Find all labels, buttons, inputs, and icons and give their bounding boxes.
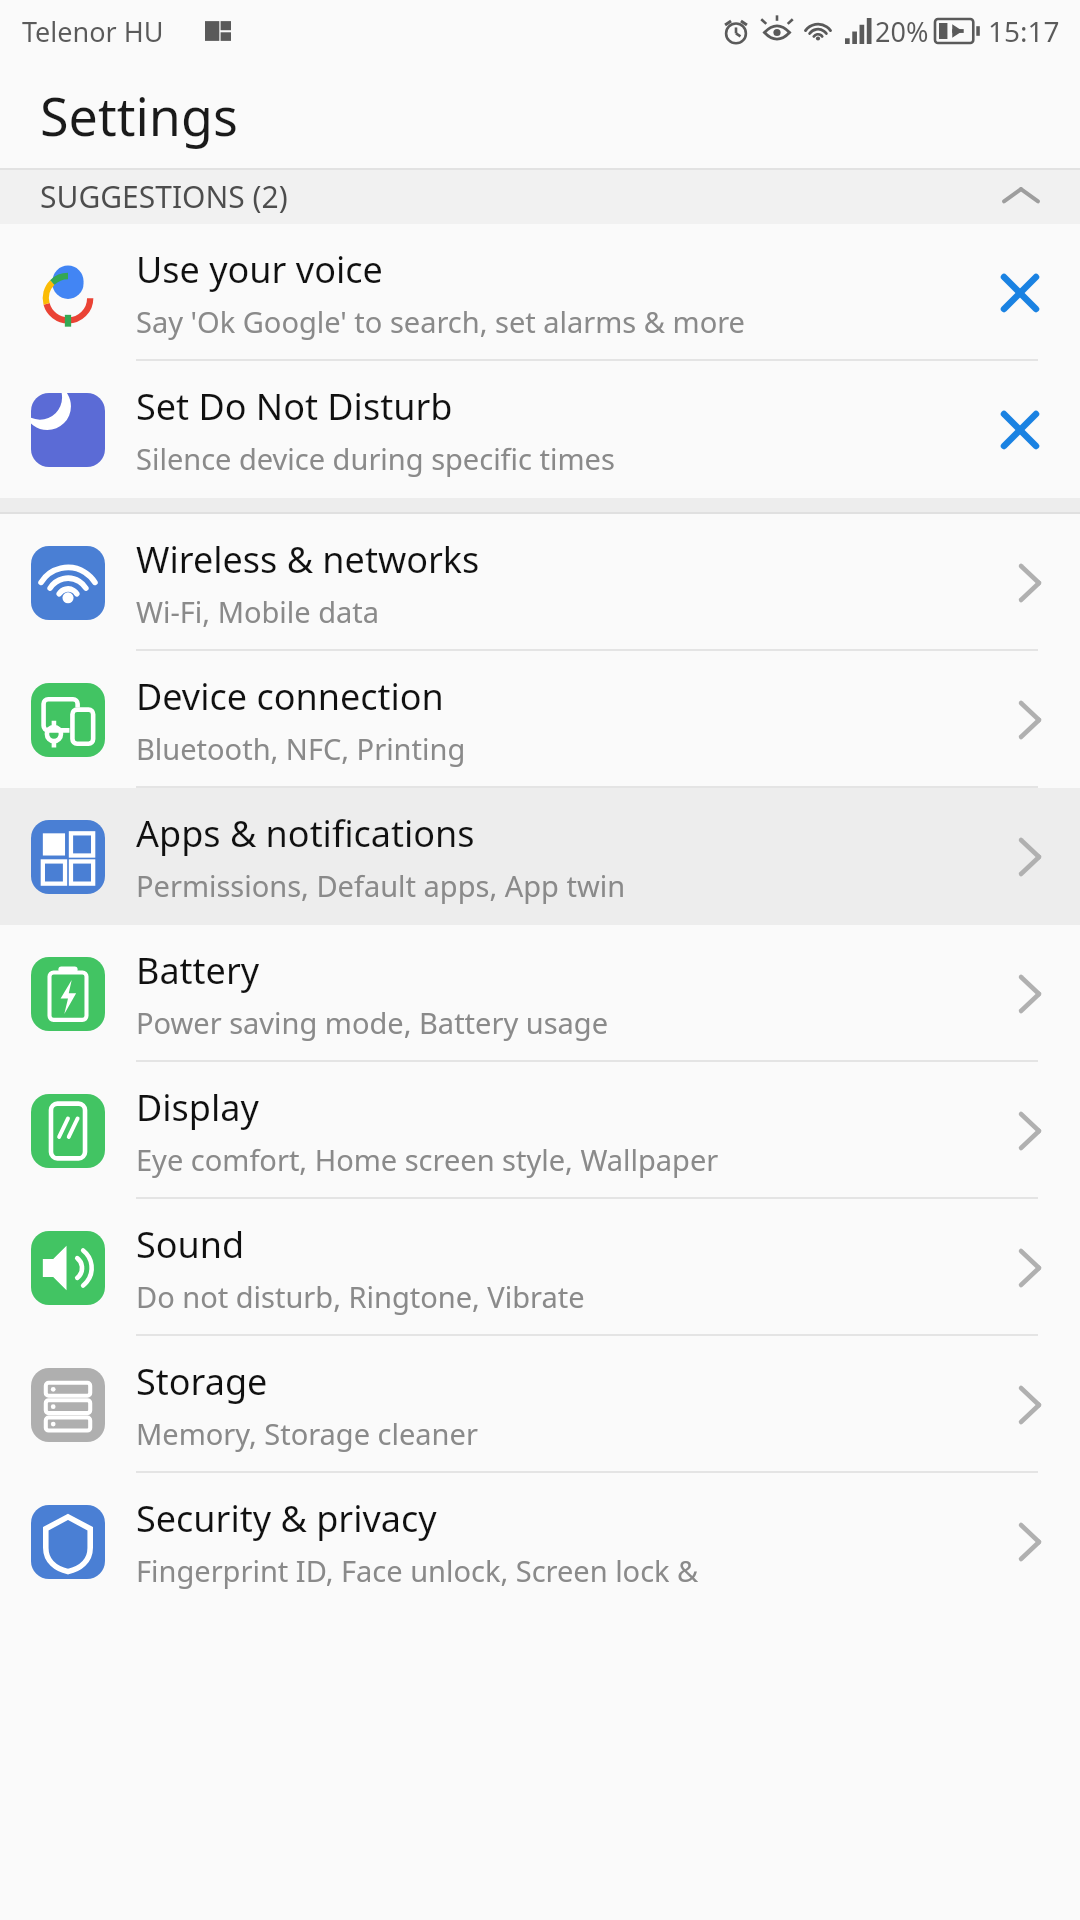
button[interactable]: Dismiss Use your voice [960,224,1080,361]
staticText: Wi-Fi, Mobile data [136,592,380,631]
button[interactable]: Device connection [0,651,1080,788]
button[interactable]: Dismiss Set Do Not Disturb [960,361,1080,498]
button[interactable]: Apps & notifications [0,788,1080,925]
staticText: Settings [40,80,238,151]
button[interactable]: SUGGESTIONS (2) [0,168,1080,224]
staticText: Set Do Not Disturb [136,382,453,431]
staticText: SUGGESTIONS (2) [40,176,288,217]
staticText: Device connection [136,672,444,721]
button[interactable]: Set Do Not Disturb [0,361,1080,498]
staticText: 20% [875,13,929,50]
staticText: Power saving mode, Battery usage [136,1003,609,1042]
staticText: Display [136,1083,259,1132]
staticText: Silence device during specific times [136,439,615,478]
staticText: Fingerprint ID, Face unlock, Screen lock… [136,1551,699,1590]
staticText: Telenor HU [22,13,164,50]
button[interactable]: Storage [0,1336,1080,1473]
staticText: Do not disturb, Ringtone, Vibrate [136,1277,585,1316]
staticText: Use your voice [136,245,383,294]
button[interactable]: Sound [0,1199,1080,1336]
button[interactable]: Display [0,1062,1080,1199]
staticText: Sound [136,1220,245,1269]
staticText: 15:17 [988,12,1060,50]
staticText: Eye comfort, Home screen style, Wallpape… [136,1140,719,1179]
staticText: Permissions, Default apps, App twin [136,866,626,905]
button[interactable]: Battery [0,925,1080,1062]
other: Collapse suggestions [1004,179,1038,213]
staticText: Apps & notifications [136,809,475,858]
staticText: Battery [136,946,260,995]
button[interactable]: Use your voice [0,224,1080,361]
staticText: Storage [136,1357,268,1406]
button[interactable]: Wireless & networks [0,514,1080,651]
staticText: Memory, Storage cleaner [136,1414,478,1453]
button[interactable]: Security & privacy [0,1473,1080,1610]
staticText: Security & privacy [136,1494,437,1543]
staticText: Say 'Ok Google' to search, set alarms & … [136,302,745,341]
staticText: Wireless & networks [136,535,480,584]
staticText: Bluetooth, NFC, Printing [136,729,466,768]
